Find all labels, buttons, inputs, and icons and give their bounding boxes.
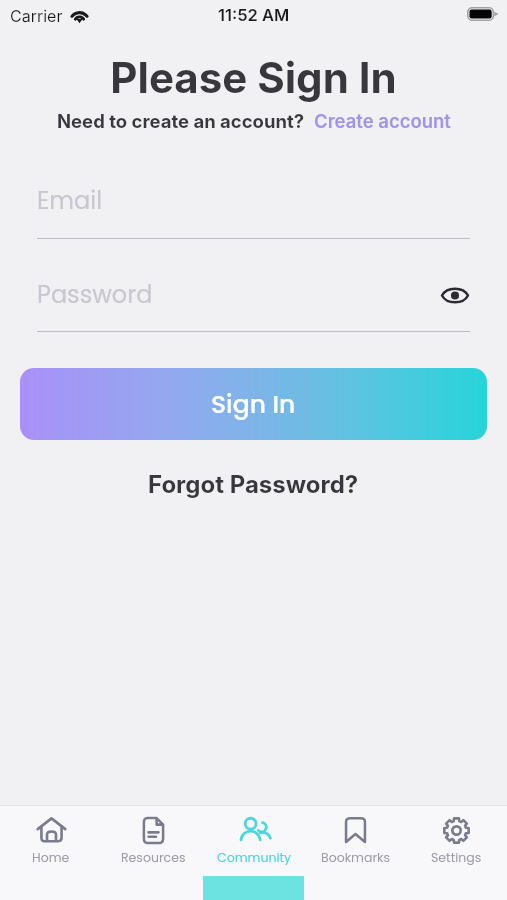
staticText: Create account: [314, 110, 451, 132]
staticText: Forgot Password?: [148, 470, 359, 499]
staticText: Carrier: [10, 6, 63, 25]
staticText: Bookmarks: [321, 849, 391, 866]
staticText: Home: [32, 849, 70, 866]
staticText: Settings: [431, 849, 482, 866]
staticText: Password: [37, 278, 153, 312]
button[interactable]: Bookmarks: [305, 806, 406, 876]
button[interactable]: Sign In: [20, 368, 487, 440]
button[interactable]: Settings: [406, 806, 507, 876]
button[interactable]: Resources: [102, 806, 204, 876]
button[interactable]: Create account: [314, 110, 451, 132]
staticText: Need to create an account?: [57, 110, 305, 132]
button[interactable]: Community: [204, 806, 305, 876]
button[interactable]: Forgot Password?: [148, 470, 359, 499]
staticText: Community: [217, 849, 292, 866]
staticText: 11:52 AM: [218, 5, 290, 25]
button[interactable]: Show password: [436, 278, 470, 312]
staticText: Please Sign In: [0, 52, 507, 103]
staticText: Email: [37, 184, 103, 218]
staticText: Sign In: [211, 387, 296, 422]
staticText: Resources: [121, 849, 186, 866]
button[interactable]: Home: [0, 806, 102, 876]
